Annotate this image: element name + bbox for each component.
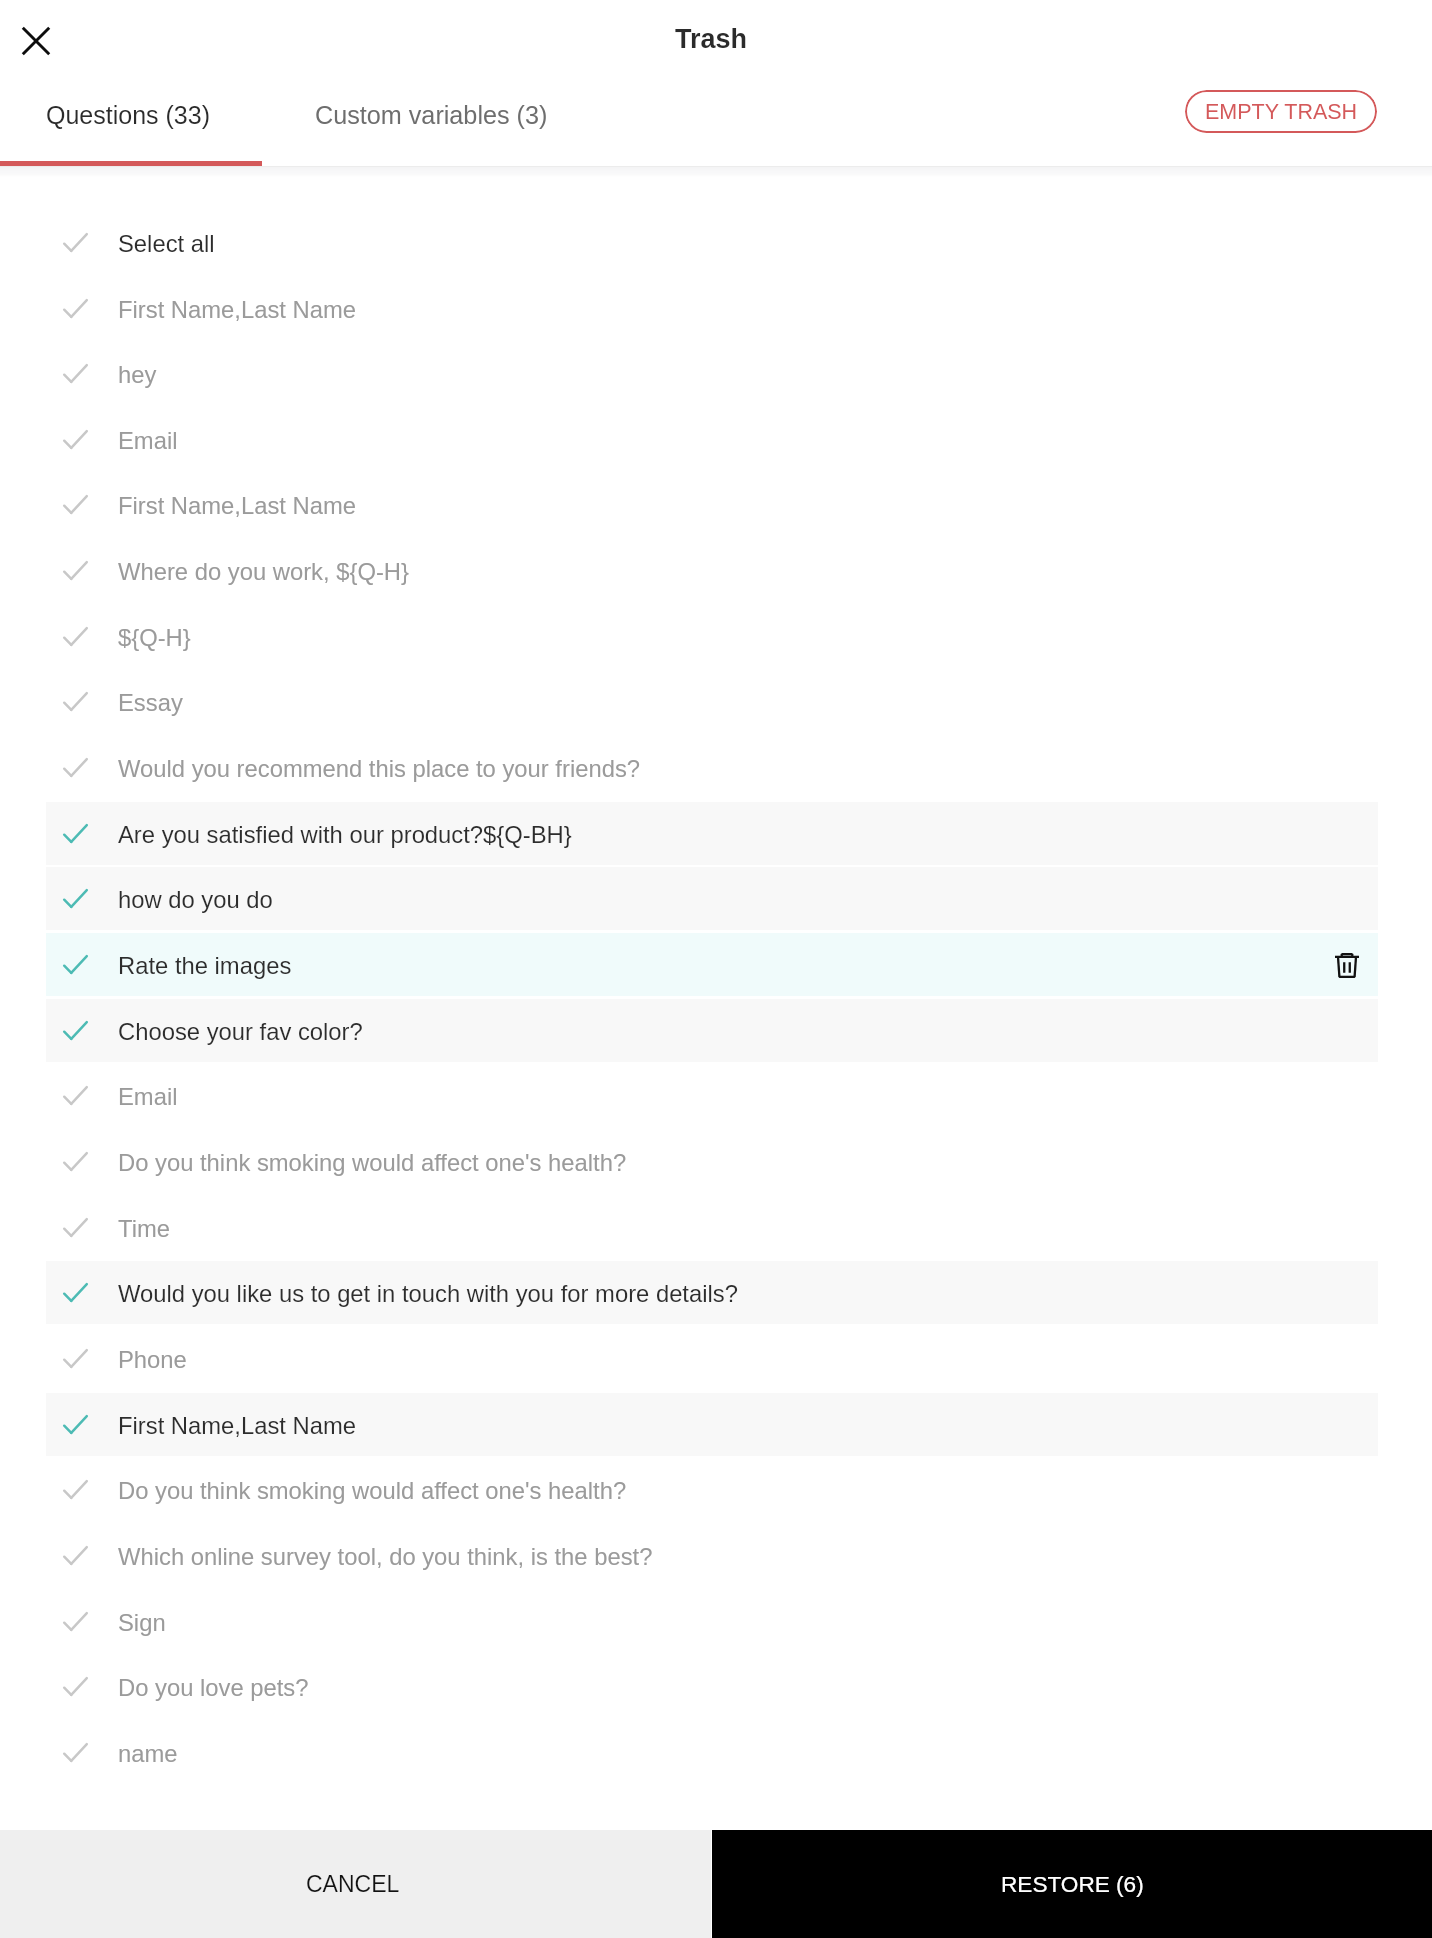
staticText: Trash <box>675 24 748 54</box>
staticText: hey <box>118 361 157 388</box>
staticText: First Name,Last Name <box>118 1412 357 1439</box>
button[interactable]: Are you satisfied with our product?${Q-B… <box>46 802 1378 865</box>
staticText: Email <box>118 427 178 454</box>
staticText: Essay <box>118 689 183 716</box>
staticText: Which online survey tool, do you think, … <box>118 1543 653 1570</box>
staticText: name <box>118 1740 178 1767</box>
button[interactable]: name <box>46 1721 1378 1784</box>
button[interactable]: Do you love pets? <box>46 1655 1378 1718</box>
button[interactable]: hey <box>46 342 1378 405</box>
staticText: Questions (33) <box>46 101 210 129</box>
button[interactable]: First Name,Last Name <box>46 1393 1378 1456</box>
staticText: Sign <box>118 1609 166 1636</box>
button[interactable]: Custom variables (3) <box>262 76 600 166</box>
button[interactable]: Close <box>8 13 63 68</box>
staticText: Where do you work, ${Q-H} <box>118 558 409 585</box>
button[interactable]: Do you think smoking would affect one's … <box>46 1130 1378 1193</box>
button[interactable]: ${Q-H} <box>46 605 1378 668</box>
button[interactable]: Choose your fav color? <box>46 999 1378 1062</box>
staticText: First Name,Last Name <box>118 296 357 323</box>
button[interactable]: Phone <box>46 1327 1378 1390</box>
button[interactable]: Email <box>46 1064 1378 1127</box>
staticText: Phone <box>118 1346 187 1373</box>
staticText: Are you satisfied with our product?${Q-B… <box>118 821 572 848</box>
button[interactable]: Essay <box>46 670 1378 733</box>
button[interactable]: EMPTY TRASH <box>1185 90 1377 133</box>
staticText: Email <box>118 1083 178 1110</box>
button[interactable]: Delete <box>1325 943 1369 987</box>
button[interactable]: Would you like us to get in touch with y… <box>46 1261 1378 1324</box>
button[interactable]: First Name,Last Name <box>46 473 1378 536</box>
staticText: Would you like us to get in touch with y… <box>118 1280 738 1307</box>
button[interactable]: Questions (33) <box>0 76 262 166</box>
button[interactable]: Which online survey tool, do you think, … <box>46 1524 1378 1587</box>
button[interactable]: Would you recommend this place to your f… <box>46 736 1378 799</box>
staticText: Time <box>118 1215 170 1242</box>
button[interactable]: First Name,Last Name <box>46 277 1378 340</box>
staticText: First Name,Last Name <box>118 492 357 519</box>
staticText: Do you think smoking would affect one's … <box>118 1477 627 1504</box>
staticText: ${Q-H} <box>118 624 191 651</box>
button[interactable]: Where do you work, ${Q-H} <box>46 539 1378 602</box>
staticText: how do you do <box>118 886 273 913</box>
button[interactable]: Rate the images <box>46 933 1378 996</box>
button[interactable]: Select all <box>46 211 1378 274</box>
staticText: Do you think smoking would affect one's … <box>118 1149 627 1176</box>
staticText: Custom variables (3) <box>315 101 548 129</box>
staticText: EMPTY TRASH <box>1205 100 1358 124</box>
staticText: Choose your fav color? <box>118 1018 363 1045</box>
button[interactable]: RESTORE (6) <box>712 1830 1432 1938</box>
staticText: RESTORE (6) <box>1001 1872 1144 1897</box>
button[interactable]: Email <box>46 408 1378 471</box>
button[interactable]: how do you do <box>46 867 1378 930</box>
button[interactable]: CANCEL <box>0 1830 711 1938</box>
button[interactable]: Sign <box>46 1590 1378 1653</box>
staticText: Would you recommend this place to your f… <box>118 755 641 782</box>
staticText: Do you love pets? <box>118 1674 309 1701</box>
button[interactable]: Do you think smoking would affect one's … <box>46 1458 1378 1521</box>
staticText: Rate the images <box>118 952 292 979</box>
button[interactable]: Time <box>46 1196 1378 1259</box>
staticText: Select all <box>118 230 215 257</box>
staticText: CANCEL <box>306 1871 400 1897</box>
